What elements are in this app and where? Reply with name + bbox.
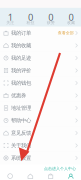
- staticText: 关注: [6, 20, 14, 25]
- button[interactable]: 意见反馈: [0, 127, 81, 139]
- button[interactable]: 帮助中心: [0, 114, 81, 127]
- staticText: 查看全部: [58, 30, 74, 35]
- staticText: 我的评价: [11, 67, 31, 74]
- staticText: 我的收藏: [11, 42, 31, 49]
- button[interactable]: 我的收藏: [0, 39, 81, 52]
- staticText: 我的钱包: [11, 80, 31, 86]
- button[interactable]: 我的: [61, 173, 81, 180]
- staticText: 我的足迹: [11, 55, 31, 61]
- button[interactable]: 系统设置: [0, 152, 81, 164]
- staticText: 获赞: [47, 20, 55, 25]
- staticText: 我的订单: [11, 30, 31, 36]
- button[interactable]: 0: [20, 8, 40, 27]
- staticText: 关于我们: [11, 142, 31, 149]
- staticText: 1: [8, 11, 13, 23]
- button[interactable]: 优惠券: [0, 89, 81, 102]
- button[interactable]: 地址管理: [0, 102, 81, 114]
- staticText: 系统设置: [11, 155, 31, 161]
- button[interactable]: 1: [0, 8, 20, 27]
- button[interactable]: 0: [61, 8, 81, 27]
- button[interactable]: 首页: [0, 173, 20, 180]
- staticText: 优惠券: [11, 92, 26, 99]
- staticText: 地址管理: [11, 105, 31, 111]
- button[interactable]: 我的评价: [0, 64, 81, 77]
- button[interactable]: 我的足迹: [0, 52, 81, 64]
- button[interactable]: 关于我们: [0, 139, 81, 152]
- staticText: 0: [68, 11, 73, 23]
- button[interactable]: 我的订单: [0, 27, 81, 39]
- staticText: 0: [28, 11, 33, 23]
- button[interactable]: 购物车: [40, 173, 61, 180]
- staticText: 0: [48, 11, 53, 23]
- staticText: 粉丝: [26, 20, 34, 25]
- staticText: 意见反馈: [11, 130, 31, 136]
- button[interactable]: 0: [40, 8, 61, 27]
- staticText: 帮助中心: [11, 117, 31, 124]
- button[interactable]: 分类: [20, 173, 40, 180]
- button[interactable]: 我的钱包: [0, 77, 81, 89]
- staticText: 收藏: [67, 20, 75, 25]
- staticText: 点击进入个人中心: [44, 166, 76, 171]
